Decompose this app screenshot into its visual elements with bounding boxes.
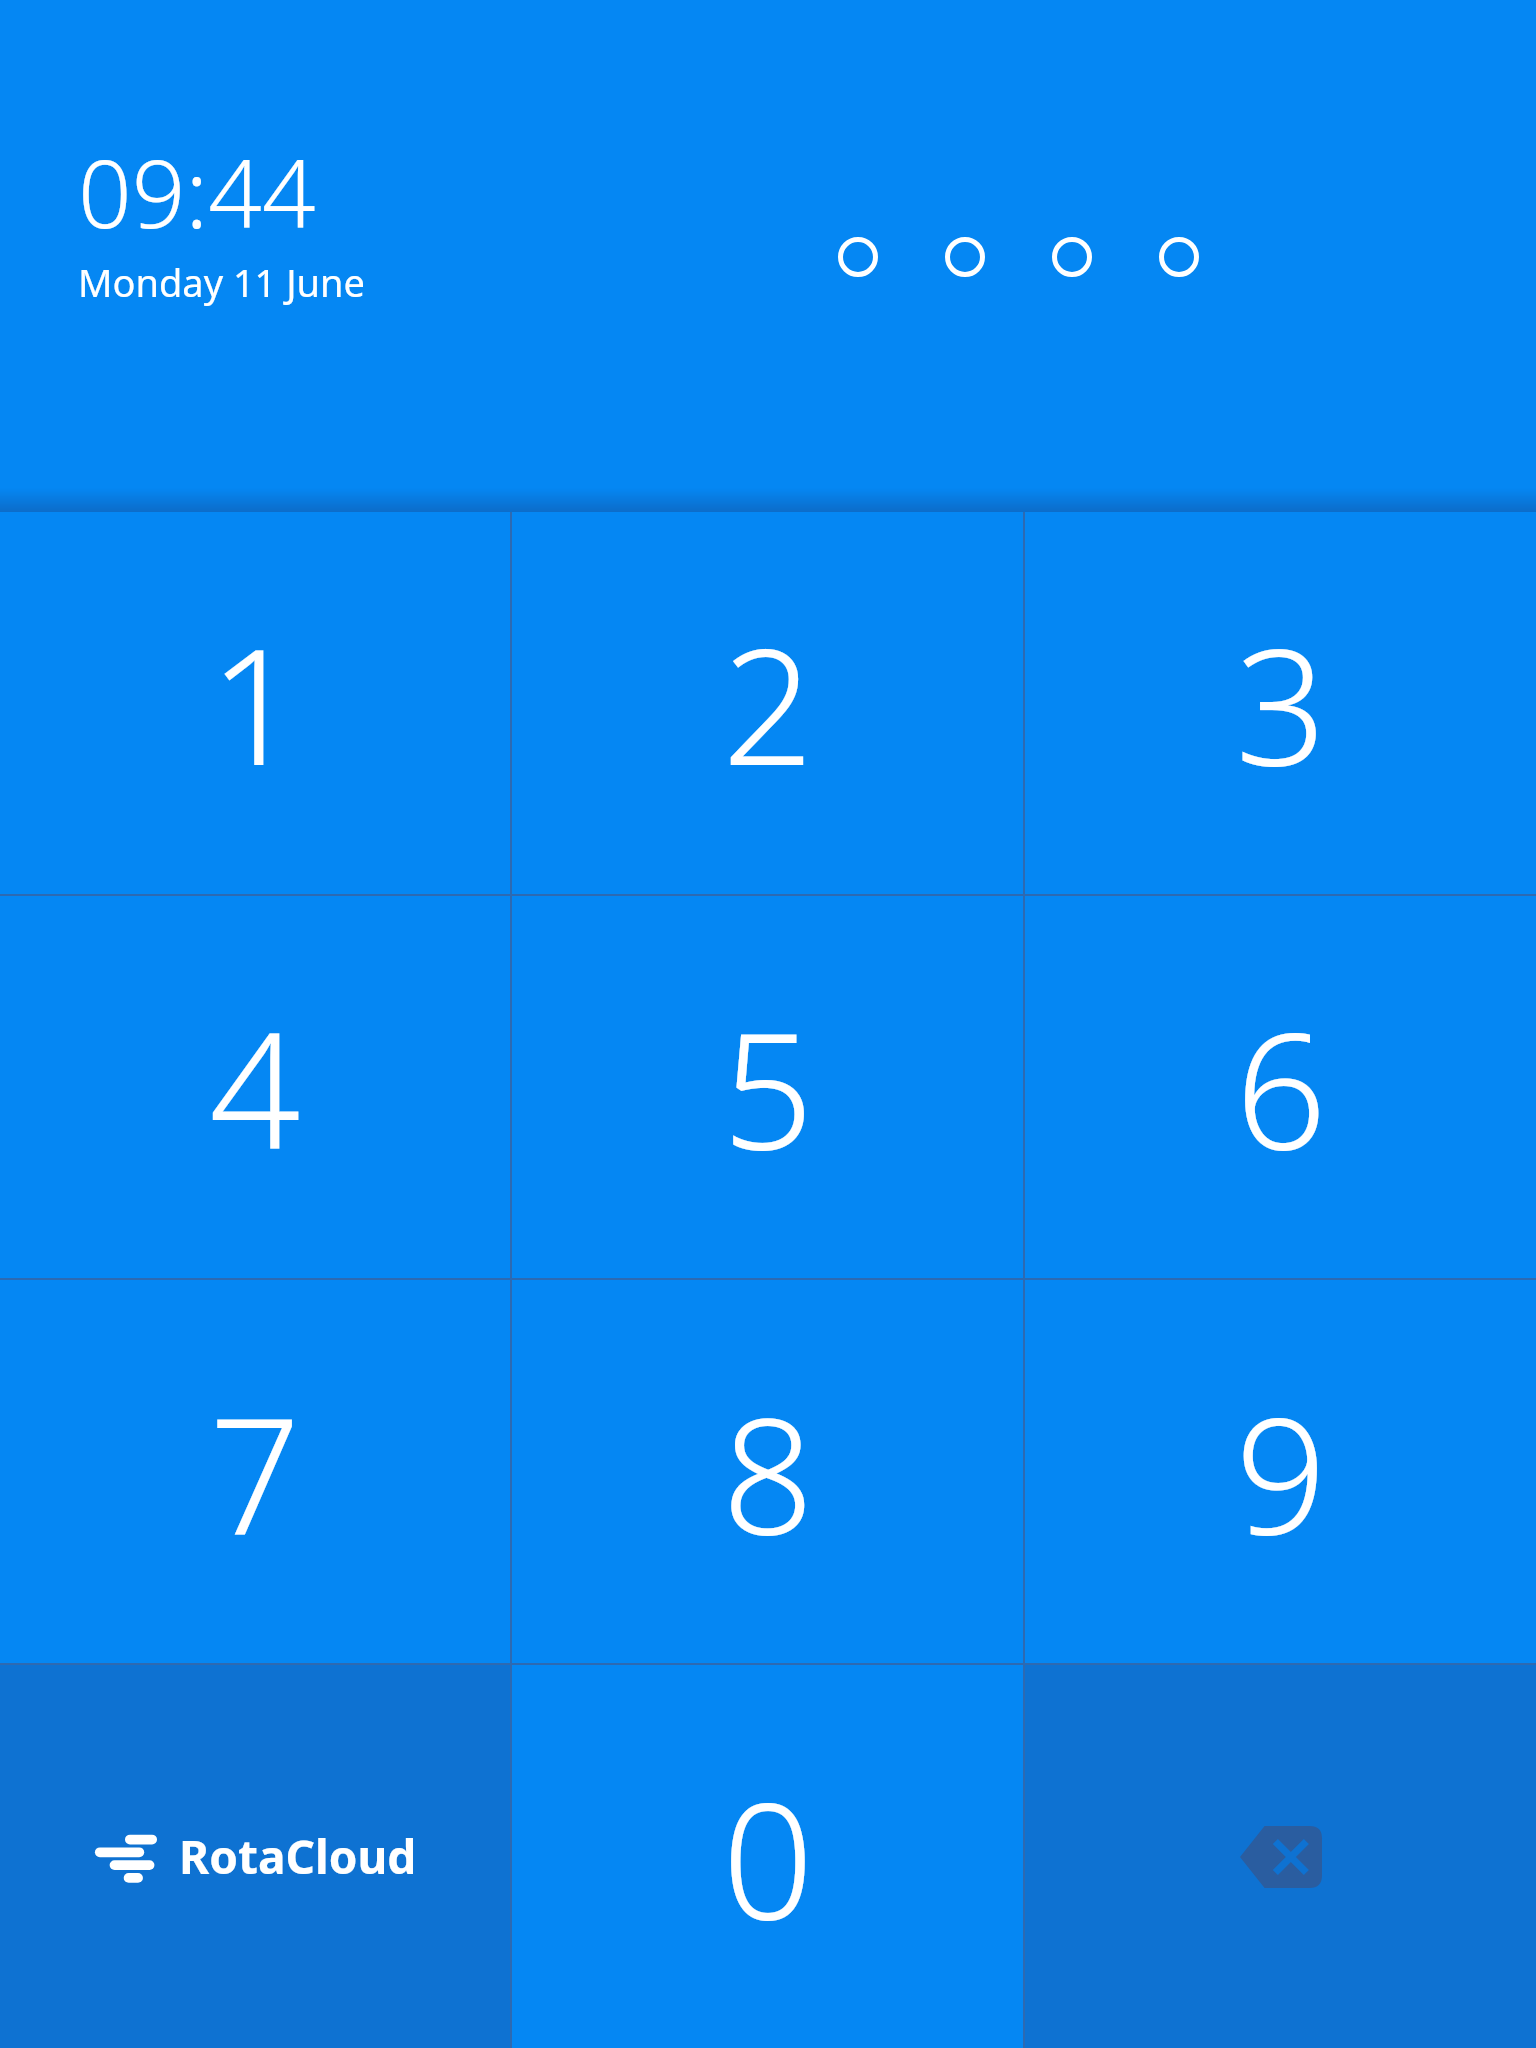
staticText: 5	[722, 978, 814, 1196]
button[interactable]: 4	[0, 896, 510, 1278]
button[interactable]: 2	[512, 512, 1023, 894]
button[interactable]: 8	[512, 1280, 1023, 1663]
button[interactable]: 1	[0, 512, 510, 894]
button[interactable]: 3	[1025, 512, 1536, 894]
staticText: 3	[1235, 594, 1327, 812]
staticText: 9	[1235, 1363, 1327, 1581]
staticText: 09:44	[78, 128, 316, 256]
button[interactable]: 0	[512, 1665, 1023, 2048]
button[interactable]: RotaCloud	[0, 1665, 510, 2048]
staticText: 8	[722, 1363, 814, 1581]
button[interactable]: 9	[1025, 1280, 1536, 1663]
button[interactable]: 6	[1025, 896, 1536, 1278]
staticText: Monday 11 June	[78, 256, 366, 308]
staticText: 1	[209, 594, 301, 812]
button[interactable]: 5	[512, 896, 1023, 1278]
staticText: 4	[209, 978, 301, 1196]
staticText: 0	[722, 1748, 814, 1966]
button[interactable]: 7	[0, 1280, 510, 1663]
staticText: 2	[722, 594, 814, 812]
button[interactable]: Backspace	[1025, 1665, 1536, 2048]
staticText: RotaCloud	[179, 1825, 417, 1888]
staticText: 7	[209, 1363, 301, 1581]
staticText: 6	[1235, 978, 1327, 1196]
